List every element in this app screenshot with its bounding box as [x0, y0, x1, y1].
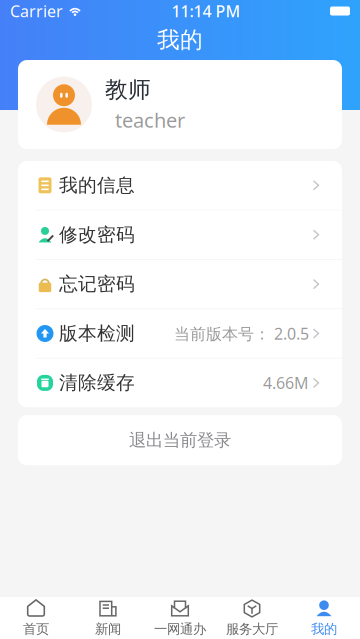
- button[interactable]: 一网通办: [144, 597, 216, 639]
- staticText: 退出当前登录: [129, 430, 231, 451]
- staticText: 首页: [23, 621, 49, 637]
- button[interactable]: 我的: [288, 597, 360, 639]
- staticText: 我的: [157, 26, 203, 54]
- staticText: 当前版本号： 2.0.5: [174, 323, 309, 344]
- staticText: Carrier: [10, 0, 63, 22]
- staticText: 服务大厅: [226, 621, 278, 637]
- staticText: 忘记密码: [59, 273, 135, 295]
- button[interactable]: 服务大厅: [216, 597, 288, 639]
- button[interactable]: 首页: [0, 597, 72, 639]
- staticText: 清除缓存: [59, 371, 135, 394]
- staticText: 教师: [105, 76, 151, 104]
- button[interactable]: 我的信息: [18, 161, 342, 210]
- button[interactable]: 忘记密码: [18, 260, 342, 308]
- staticText: 4.66M: [263, 372, 309, 393]
- staticText: 版本检测: [59, 322, 135, 345]
- staticText: teacher: [105, 107, 185, 133]
- staticText: 我的信息: [59, 174, 135, 197]
- button[interactable]: 清除缓存: [18, 359, 342, 407]
- button[interactable]: 版本检测: [18, 309, 342, 358]
- button[interactable]: 退出当前登录: [18, 415, 342, 465]
- staticText: 11:14 PM: [171, 0, 240, 22]
- staticText: 修改密码: [59, 223, 135, 246]
- button[interactable]: 新闻: [72, 597, 144, 639]
- staticText: 新闻: [95, 621, 121, 637]
- staticText: 我的: [311, 621, 337, 637]
- button[interactable]: 修改密码: [18, 210, 342, 259]
- staticText: 一网通办: [154, 621, 206, 637]
